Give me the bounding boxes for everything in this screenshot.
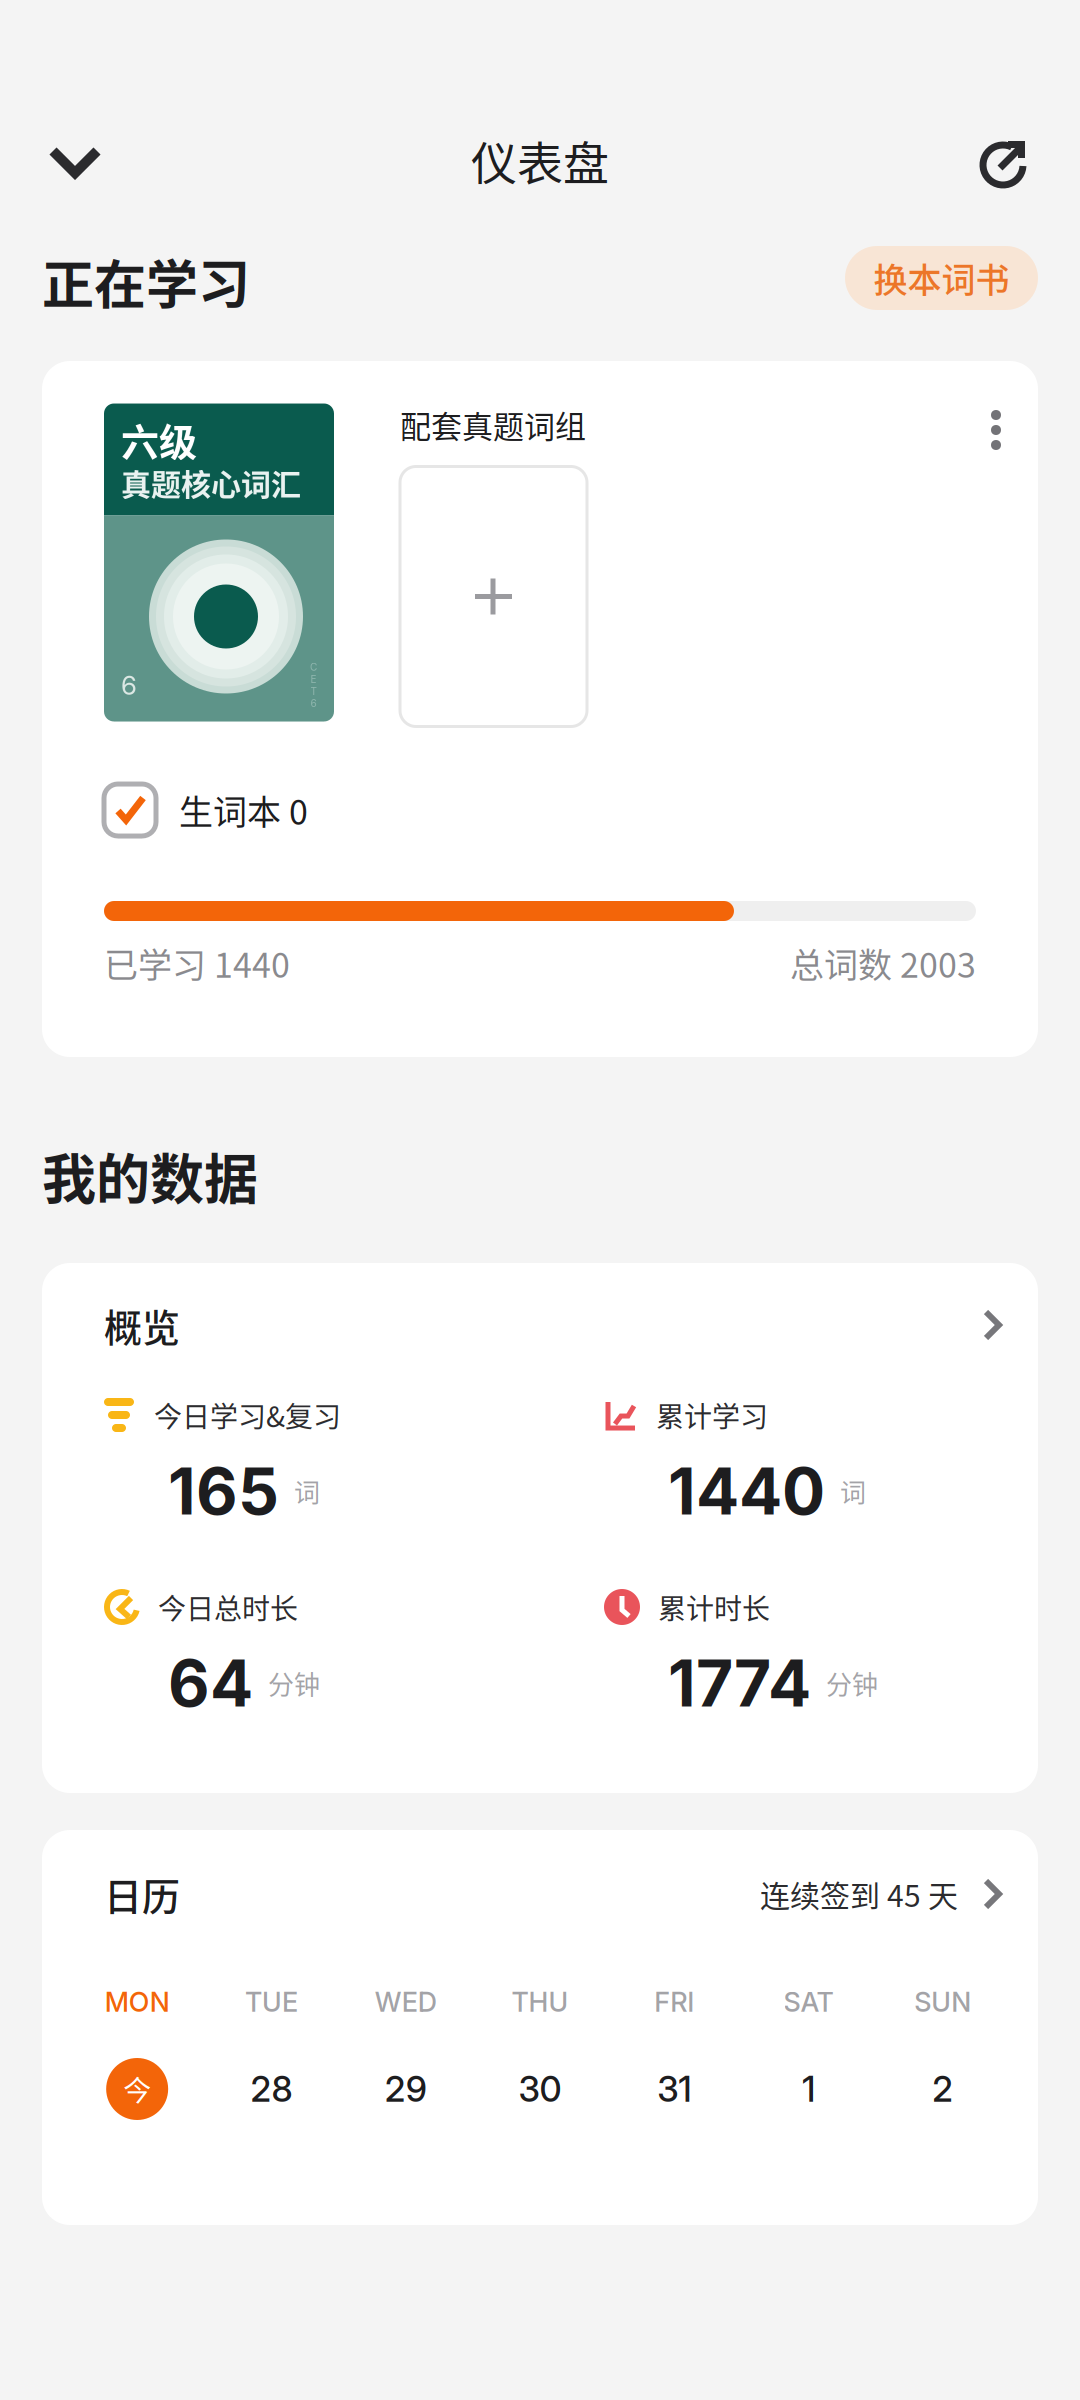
staticText: T <box>310 685 316 697</box>
staticText: SAT <box>784 1986 834 2018</box>
staticText: 换本词书 <box>873 253 1009 303</box>
staticText: 我的数据 <box>42 1137 258 1215</box>
staticText: THU <box>511 1986 568 2018</box>
staticText: 今日总时长 <box>158 1587 298 1627</box>
staticText: 已学习 1440 <box>104 938 290 988</box>
staticText: 累计时长 <box>658 1587 770 1627</box>
staticText: 2 <box>932 2068 953 2110</box>
staticText: WED <box>375 1986 437 2018</box>
staticText: C <box>310 661 317 673</box>
staticText: 165 <box>168 1453 279 1530</box>
staticText: 今 <box>123 2069 151 2109</box>
staticText: 仪表盘 <box>471 127 609 193</box>
staticText: 词 <box>294 1472 320 1510</box>
staticText: 64 <box>168 1645 253 1722</box>
staticText: SUN <box>914 1986 971 2018</box>
staticText: 六级 <box>121 412 197 467</box>
staticText: MON <box>105 1986 170 2018</box>
staticText: 总词数 2003 <box>790 938 976 988</box>
staticText: E <box>310 673 316 685</box>
staticText: 概览 <box>104 1297 180 1352</box>
staticText: 29 <box>385 2068 427 2110</box>
button[interactable]: More options <box>970 397 1022 728</box>
staticText: 1 <box>802 2068 815 2110</box>
staticText: 6 <box>310 697 316 709</box>
staticText: 28 <box>250 2068 292 2110</box>
staticText: 正在学习 <box>42 243 250 319</box>
button[interactable]: Add word list <box>400 466 587 726</box>
staticText: 词 <box>840 1472 866 1510</box>
staticText: TUE <box>245 1986 298 2018</box>
button[interactable]: 换本词书 <box>845 246 1038 310</box>
staticText: 今日学习&复习 <box>154 1395 341 1435</box>
staticText: 日历 <box>104 1866 180 1921</box>
staticText: FRI <box>654 1986 694 2018</box>
staticText: 真题核心词汇 <box>121 461 301 504</box>
button[interactable]: 概览 <box>42 1299 1038 1351</box>
staticText: 分钟 <box>268 1664 320 1702</box>
staticText: 连续签到 45 天 <box>760 1872 958 1916</box>
staticText: 1774 <box>668 1645 811 1722</box>
staticText: 1440 <box>668 1453 825 1530</box>
staticText: 31 <box>657 2068 691 2110</box>
staticText: 生词本 0 <box>179 785 308 835</box>
button[interactable]: Wordbook <box>104 784 156 836</box>
button[interactable]: Collapse <box>0 112 150 208</box>
staticText: 6 <box>121 670 137 701</box>
button[interactable]: Share <box>930 112 1080 208</box>
staticText: 分钟 <box>826 1664 878 1702</box>
button[interactable]: 日历 <box>42 1868 1038 1920</box>
staticText: 30 <box>518 2068 561 2110</box>
staticText: 累计学习 <box>656 1395 768 1435</box>
staticText: 配套真题词组 <box>400 402 586 447</box>
